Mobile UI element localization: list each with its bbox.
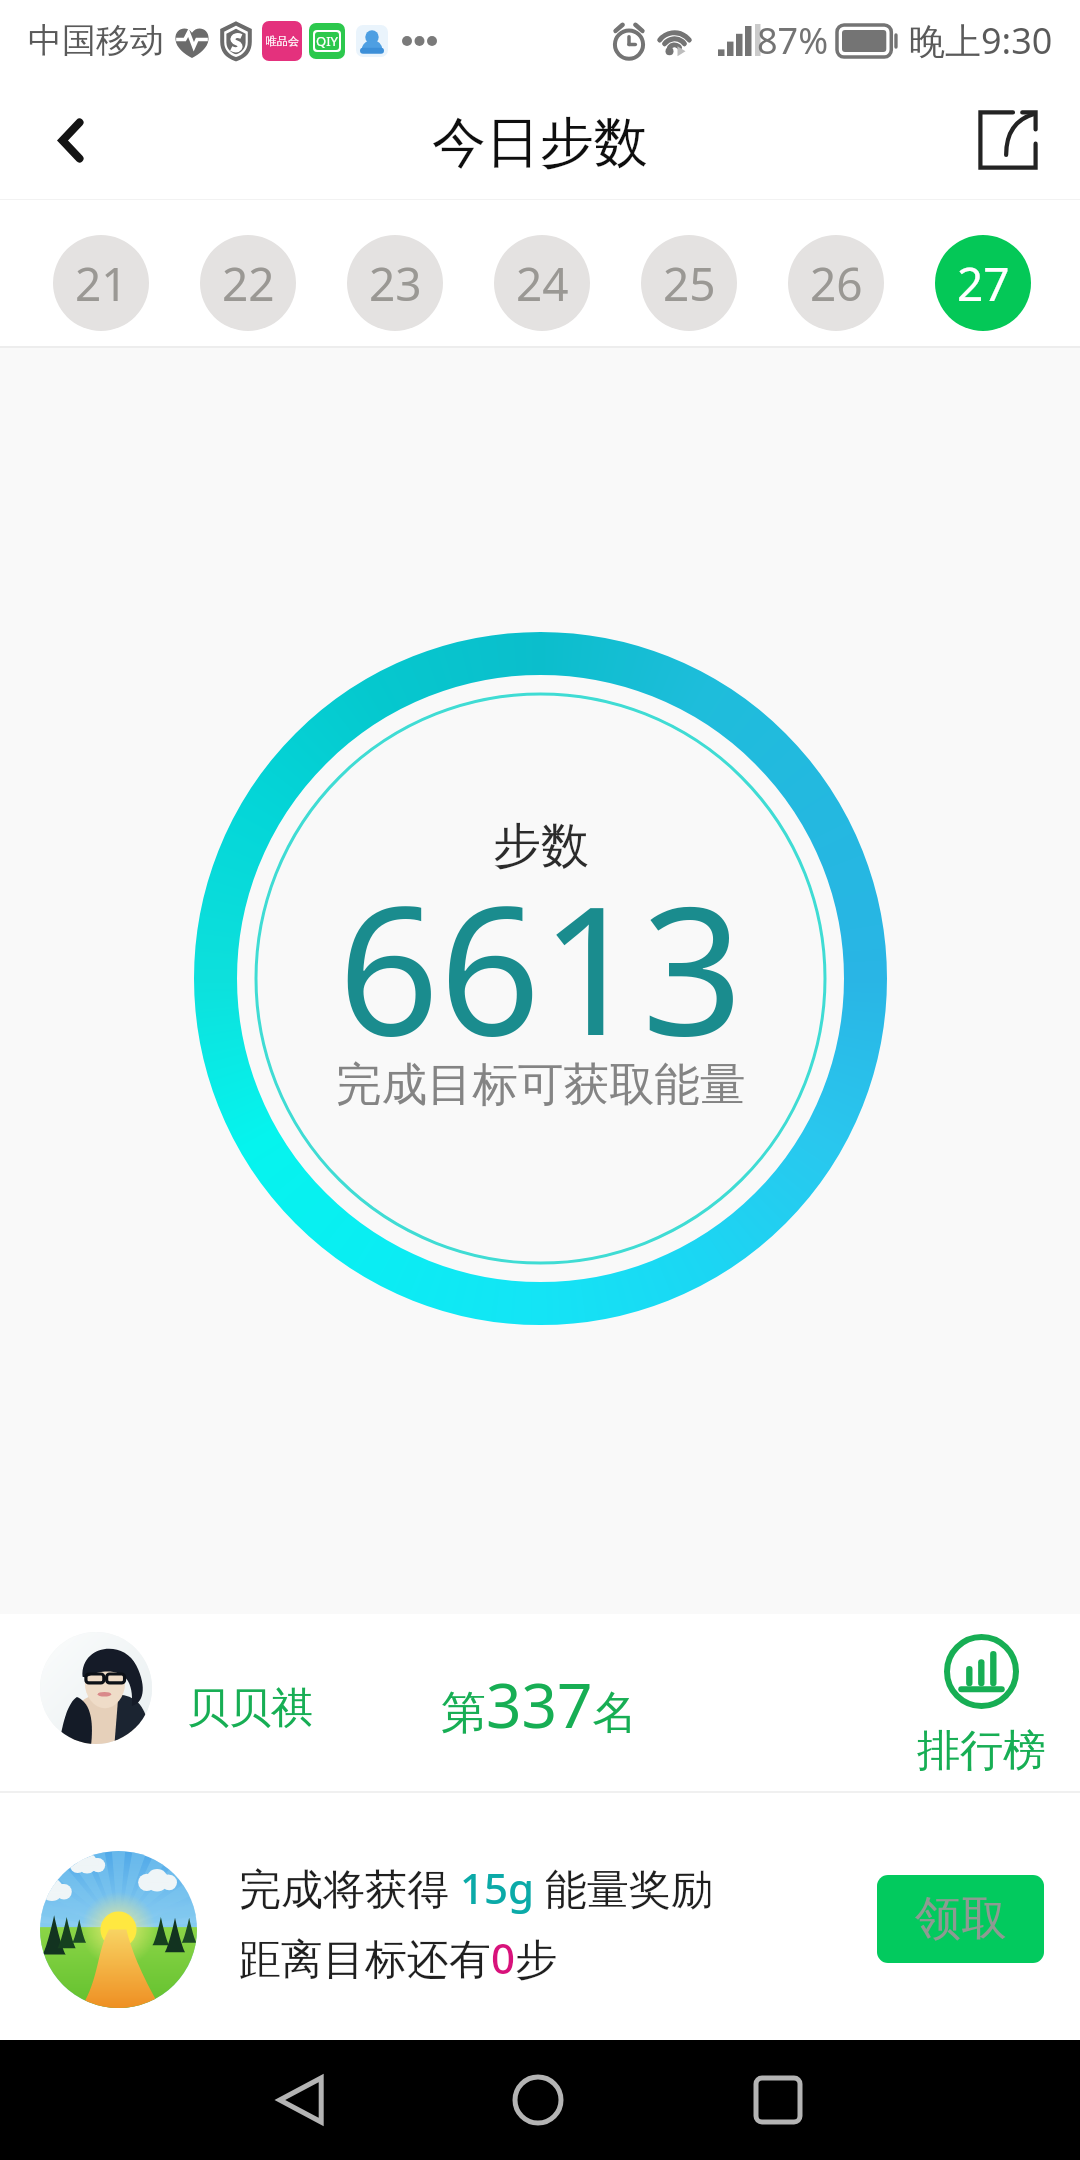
staticText: 步数 xyxy=(493,816,589,876)
staticText: 中国移动 xyxy=(28,19,164,62)
button[interactable]: 27 xyxy=(935,235,1031,331)
staticText: 第337名 xyxy=(441,1662,638,1746)
staticText: 6613 xyxy=(338,846,743,1087)
button[interactable]: Back xyxy=(36,105,106,175)
staticText: 24 xyxy=(516,252,569,315)
button[interactable]: 23 xyxy=(347,235,443,331)
button[interactable]: 领取 xyxy=(877,1875,1044,1963)
button[interactable]: Back xyxy=(240,2040,360,2160)
button[interactable]: Recents xyxy=(718,2040,838,2160)
staticText: 27 xyxy=(957,252,1010,315)
staticText: 唯品会 xyxy=(266,34,299,48)
staticText: 22 xyxy=(222,252,275,315)
staticText: 26 xyxy=(810,252,863,315)
staticText: 87% xyxy=(757,16,829,65)
button[interactable]: 25 xyxy=(641,235,737,331)
staticText: 领取 xyxy=(915,1890,1007,1948)
button[interactable]: 21 xyxy=(53,235,149,331)
button[interactable]: Home xyxy=(478,2040,598,2160)
button[interactable]: Share xyxy=(970,102,1046,178)
staticText: 晚上9:30 xyxy=(909,16,1053,65)
staticText: QIY xyxy=(316,32,338,50)
staticText: 贝贝祺 xyxy=(187,1682,313,1735)
button[interactable]: 排行榜 xyxy=(911,1614,1051,1774)
staticText: 距离目标还有0步 xyxy=(239,1929,558,1986)
staticText: 今日步数 xyxy=(432,109,648,177)
staticText: 排行榜 xyxy=(917,1724,1046,1778)
staticText: 完成将获得 15g 能量奖励 xyxy=(239,1859,713,1916)
button[interactable]: 26 xyxy=(788,235,884,331)
staticText: 25 xyxy=(663,252,716,315)
staticText: 23 xyxy=(369,252,422,315)
staticText: 完成目标可获取能量 xyxy=(336,1056,746,1113)
button[interactable]: 22 xyxy=(200,235,296,331)
button[interactable]: 24 xyxy=(494,235,590,331)
button[interactable]: Profile photo xyxy=(40,1632,152,1744)
staticText: 21 xyxy=(75,252,128,315)
